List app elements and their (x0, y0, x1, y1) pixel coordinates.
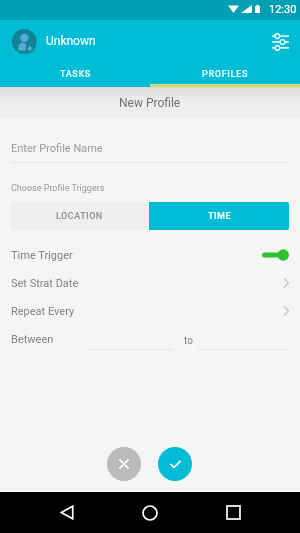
staticText: 12:30 (269, 3, 297, 16)
button[interactable]: LOCATION (10, 202, 149, 230)
button[interactable]: TIME (149, 202, 289, 230)
button[interactable]: Repeat Every (0, 297, 300, 325)
button[interactable]: Set Strat Date (0, 269, 300, 297)
staticText: PROFILES (202, 69, 249, 80)
staticText: Enter Profile Name (11, 142, 103, 155)
button[interactable]: Account (12, 29, 37, 54)
staticText: Time Trigger (11, 249, 73, 262)
staticText: to (184, 335, 193, 347)
button[interactable]: Recents (218, 497, 249, 528)
staticText: Repeat Every (11, 305, 75, 318)
button[interactable]: Cancel (107, 447, 141, 481)
button[interactable]: PROFILES (150, 64, 300, 84)
button[interactable]: Settings (266, 28, 294, 56)
staticText: TASKS (60, 69, 91, 80)
staticText: Unknown (46, 34, 96, 48)
staticText: Choose Profile Triggers (11, 183, 105, 194)
staticText: Set Strat Date (11, 277, 79, 290)
staticText: TIME (208, 211, 231, 222)
button[interactable]: TASKS (0, 64, 150, 84)
button[interactable]: Time Trigger (0, 241, 300, 269)
button[interactable]: Back (51, 497, 82, 528)
staticText: Between (11, 333, 54, 346)
button[interactable]: Home (134, 497, 165, 528)
staticText: New Profile (119, 96, 181, 110)
button[interactable]: Confirm (158, 447, 192, 481)
staticText: LOCATION (56, 211, 103, 222)
